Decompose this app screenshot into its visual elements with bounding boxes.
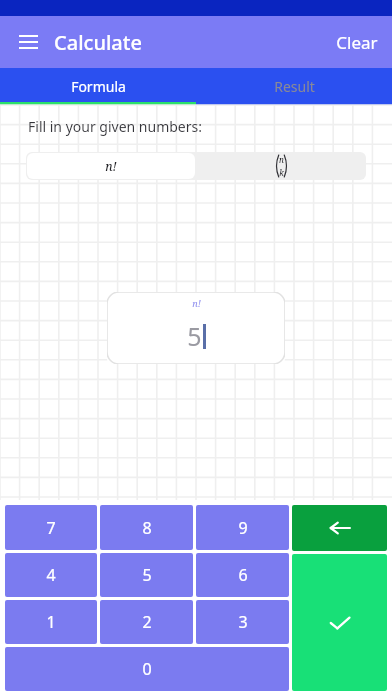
button[interactable]: 1 [5,600,97,644]
staticText: 4 [46,564,56,586]
button[interactable]: 7 [5,505,97,550]
staticText: k [279,167,284,178]
button[interactable]: 6 [196,553,289,597]
staticText: 2 [142,611,152,633]
staticText: Formula [71,77,126,96]
staticText: n! [192,297,201,309]
staticText: n [279,154,284,165]
button[interactable]: Result [196,68,392,105]
button[interactable]: Open navigation menu [8,22,48,62]
button[interactable]: n! [27,153,195,179]
staticText: 1 [46,611,56,633]
staticText: 5 [142,564,152,586]
button[interactable]: 0 [5,647,289,691]
button[interactable]: 8 [100,505,193,550]
staticText: Clear [336,31,378,54]
button[interactable]: n! [107,292,285,364]
button[interactable]: 5 [100,553,193,597]
button[interactable]: 3 [196,600,289,644]
staticText: 3 [238,611,248,633]
button[interactable]: 2 [100,600,193,644]
staticText: Calculate [54,29,142,56]
staticText: 7 [46,517,56,539]
staticText: 8 [142,517,152,539]
button[interactable]: Formula [0,68,196,105]
staticText: 0 [142,658,152,680]
button[interactable]: 4 [5,553,97,597]
staticText: 6 [238,564,248,586]
staticText: n! [105,158,117,174]
button[interactable]: Backspace [292,505,387,551]
button[interactable]: Confirm [292,554,387,691]
button[interactable]: n [196,152,366,180]
staticText: Fill in your given numbers: [28,117,202,136]
staticText: 9 [238,517,248,539]
staticText: 5 [187,319,202,353]
button[interactable]: 9 [196,505,289,550]
button[interactable]: Clear [322,16,392,68]
staticText: Result [274,77,315,96]
